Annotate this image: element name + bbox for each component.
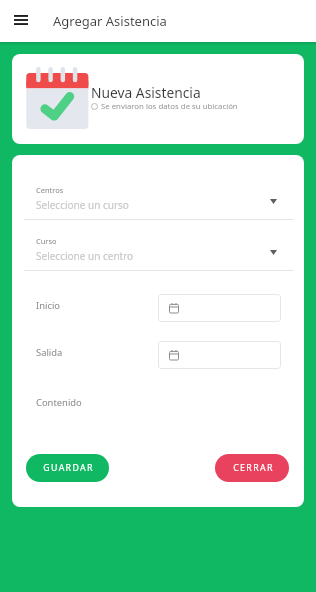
staticText: Centros xyxy=(36,185,64,195)
staticText: Inicio xyxy=(36,299,61,312)
button[interactable]: Select Inicio date xyxy=(158,294,281,322)
staticText: Contenido xyxy=(36,396,82,409)
staticText: Seleccione un centro xyxy=(36,249,134,263)
staticText: GUARDAR xyxy=(43,462,94,474)
button[interactable]: Open navigation menu xyxy=(0,1,40,41)
button[interactable]: Select Salida date xyxy=(158,341,281,369)
staticText: Seleccione un curso xyxy=(36,198,129,212)
button[interactable]: Centros xyxy=(24,185,294,221)
staticText: Se enviaron los datos de su ubicación xyxy=(101,101,238,112)
button[interactable]: Curso xyxy=(24,236,294,272)
staticText: Salida xyxy=(36,346,63,359)
staticText: CERRAR xyxy=(233,462,274,474)
button[interactable]: CERRAR xyxy=(215,454,289,482)
button[interactable]: GUARDAR xyxy=(26,454,109,482)
staticText: Curso xyxy=(36,236,57,246)
staticText: Nueva Asistencia xyxy=(91,83,201,102)
staticText: Agregar Asistencia xyxy=(53,12,167,30)
